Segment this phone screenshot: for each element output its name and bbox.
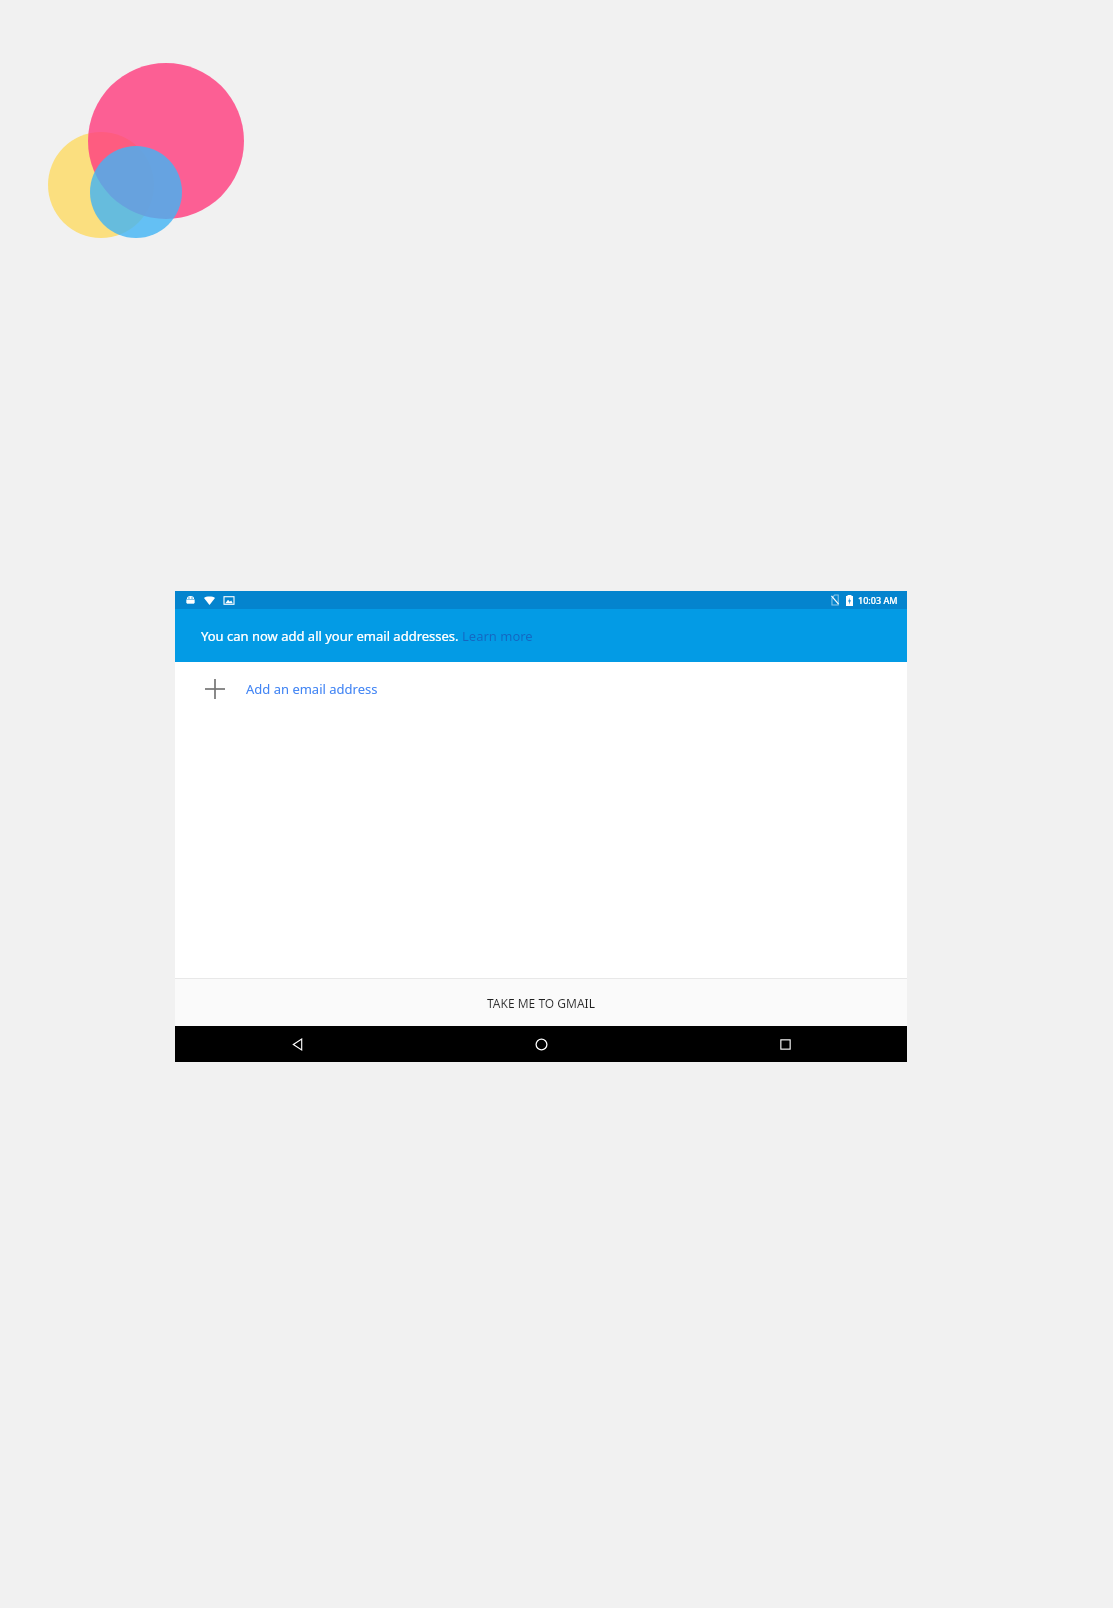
button[interactable]: Learn more	[462, 627, 533, 645]
staticText: TAKE ME TO GMAIL	[487, 995, 595, 1011]
button[interactable]: Recents	[663, 1026, 907, 1062]
staticText: Learn more	[462, 627, 533, 645]
staticText: 10:03 AM	[858, 594, 898, 606]
button[interactable]: TAKE ME TO GMAIL	[175, 979, 907, 1026]
button[interactable]: Home	[419, 1026, 663, 1062]
staticText: Add an email address	[246, 680, 378, 698]
button[interactable]: Add	[175, 662, 907, 715]
button[interactable]: Back	[175, 1026, 419, 1062]
staticText: You can now add all your email addresses…	[201, 627, 462, 645]
other: Add	[201, 675, 229, 703]
